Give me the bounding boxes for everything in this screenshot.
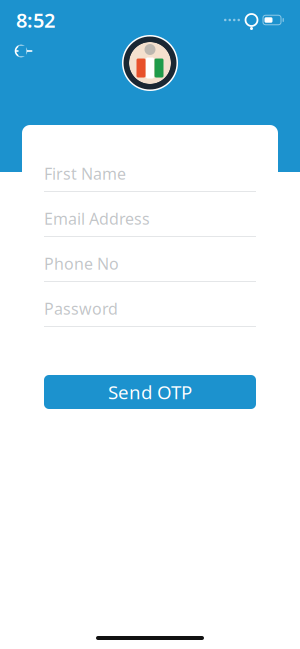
staticText: Email Address [44,208,150,229]
staticText: Send OTP [108,380,192,404]
staticText: 8:52 [16,7,55,33]
staticText: First Name [44,163,126,184]
button[interactable]: Back [6,35,42,67]
button[interactable]: Send OTP [44,375,256,409]
staticText: Password [44,298,118,319]
staticText: Phone No [44,253,119,274]
